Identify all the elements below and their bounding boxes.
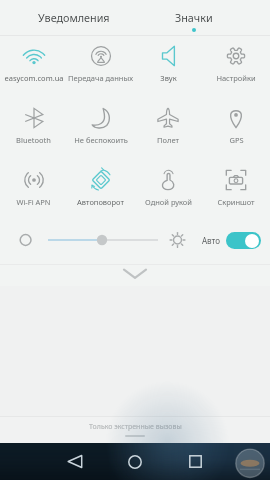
- staticText: Полет: [157, 135, 179, 145]
- button[interactable]: Home: [115, 443, 155, 480]
- button[interactable]: Recents: [175, 443, 215, 480]
- staticText: Значки: [175, 10, 213, 25]
- button[interactable]: Передача данных: [67, 36, 134, 98]
- staticText: GPS: [229, 135, 244, 145]
- staticText: Звук: [160, 73, 177, 83]
- button[interactable]: Звук: [134, 36, 202, 98]
- button[interactable]: Wi-Fi APN: [0, 160, 67, 222]
- staticText: Передача данных: [68, 73, 133, 83]
- staticText: Настройки: [216, 73, 256, 83]
- staticText: Авто: [202, 235, 220, 246]
- button[interactable]: [226, 232, 261, 249]
- button[interactable]: GPS: [202, 98, 270, 160]
- button[interactable]: Back: [54, 443, 94, 480]
- staticText: Автоповорот: [77, 197, 124, 207]
- button[interactable]: Значки: [134, 0, 254, 36]
- staticText: Одной рукой: [145, 197, 192, 207]
- staticText: Уведомления: [38, 10, 110, 25]
- staticText: easycom.com.ua: [4, 73, 64, 83]
- button[interactable]: Автоповорот: [67, 160, 134, 222]
- button[interactable]: Скриншот: [202, 160, 270, 222]
- staticText: Только экстренные вызовы: [89, 422, 182, 432]
- button[interactable]: Не беспокоить: [67, 98, 134, 160]
- staticText: Скриншот: [217, 197, 255, 207]
- staticText: Bluetooth: [16, 135, 51, 145]
- staticText: Wi-Fi APN: [16, 197, 51, 207]
- button[interactable]: Bluetooth: [0, 98, 67, 160]
- button[interactable]: Одной рукой: [134, 160, 202, 222]
- button[interactable]: Настройки: [202, 36, 270, 98]
- staticText: Не беспокоить: [74, 135, 128, 145]
- button[interactable]: Уведомления: [14, 0, 134, 36]
- button[interactable]: Полет: [134, 98, 202, 160]
- button[interactable]: easycom.com.ua: [0, 36, 67, 98]
